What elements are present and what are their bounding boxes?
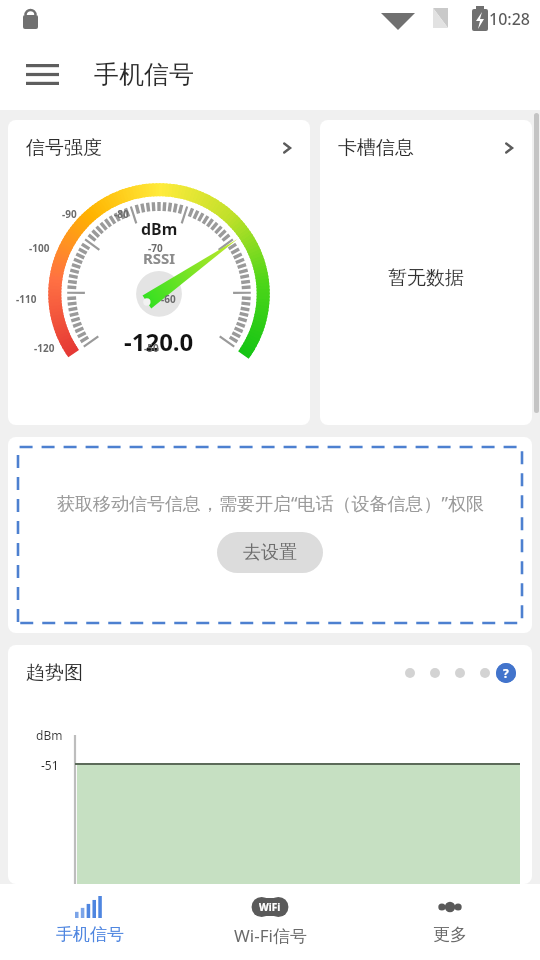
staticText: 暂无数据 (388, 266, 464, 290)
staticText: -120.0 (124, 325, 194, 358)
staticText: 信号强度 (26, 136, 102, 160)
staticText: RSSI (143, 248, 176, 268)
button[interactable]: Menu (14, 46, 70, 102)
staticText: 去设置 (243, 541, 297, 564)
staticText: 手机信号 (56, 924, 124, 945)
staticText: -60 (161, 292, 176, 306)
staticText: dBm (141, 218, 178, 240)
staticText: 更多 (433, 924, 467, 945)
staticText: WiFi (259, 900, 281, 914)
staticText: 获取移动信号信息，需要开启“电话（设备信息）”权限 (57, 491, 484, 516)
staticText: -70 (148, 241, 163, 255)
button[interactable]: 信号强度 (8, 120, 310, 425)
staticText: 卡槽信息 (338, 136, 414, 160)
button[interactable]: 更多 (360, 884, 540, 960)
button[interactable]: Help (496, 663, 516, 683)
staticText: 手机信号 (94, 59, 194, 90)
staticText: Wi-Fi信号 (234, 924, 307, 947)
staticText: ? (503, 665, 509, 681)
button[interactable]: 卡槽信息 (320, 120, 532, 425)
staticText: -120 (34, 341, 55, 355)
button[interactable]: WiFi (180, 884, 360, 960)
button[interactable]: 手机信号 (0, 884, 180, 960)
button[interactable]: 去设置 (217, 532, 323, 573)
staticText: dBm (36, 727, 63, 743)
staticText: -51 (41, 757, 59, 773)
staticText: -90 (62, 207, 77, 221)
staticText: -100 (29, 241, 50, 255)
staticText: -80 (114, 207, 129, 221)
staticText: 趋势图 (26, 661, 83, 685)
staticText: 10:28 (489, 8, 530, 30)
staticText: -50 (144, 341, 159, 355)
staticText: -110 (16, 292, 37, 306)
